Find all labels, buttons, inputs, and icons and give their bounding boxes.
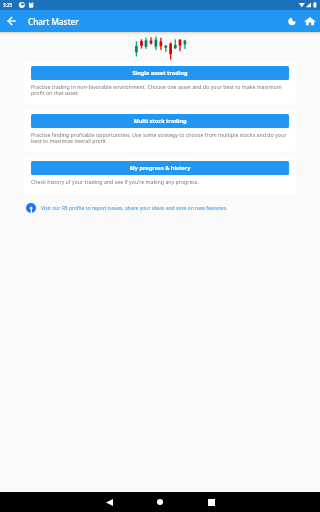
button[interactable]: Multi stock trading bbox=[31, 114, 289, 128]
button[interactable]: My progress & history bbox=[31, 161, 289, 175]
button[interactable]: Single asset trading bbox=[31, 66, 289, 80]
staticText: Single asset trading bbox=[132, 69, 188, 77]
button[interactable]: Home bbox=[149, 492, 171, 512]
staticText: Practise trading in non-favorable enviro… bbox=[31, 83, 289, 96]
button[interactable]: Back bbox=[6, 14, 20, 28]
staticText: Practise finding profitable opportunitie… bbox=[31, 131, 289, 144]
button[interactable]: Home bbox=[303, 14, 317, 28]
button[interactable]: Visit our FB profile to report issues, s… bbox=[26, 203, 300, 213]
staticText: Check history of your trading and see if… bbox=[31, 178, 199, 185]
button[interactable]: Back bbox=[98, 492, 120, 512]
staticText: Chart Master bbox=[28, 16, 79, 27]
staticText: 3:25 bbox=[3, 2, 13, 8]
button[interactable]: Recents bbox=[200, 492, 222, 512]
staticText: Visit our FB profile to report issues, s… bbox=[41, 205, 228, 212]
staticText: My progress & history bbox=[129, 164, 191, 172]
staticText: Multi stock trading bbox=[133, 117, 187, 125]
button[interactable]: Dark mode bbox=[285, 14, 299, 28]
